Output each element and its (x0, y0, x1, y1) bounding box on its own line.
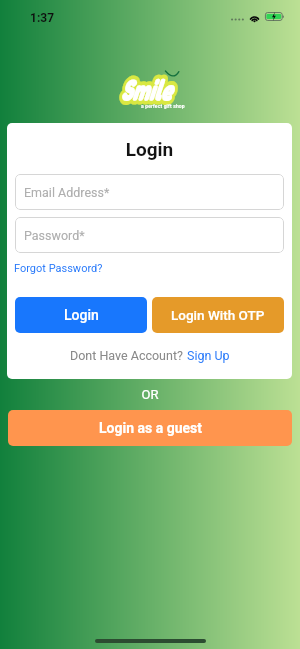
staticText: Smile (121, 72, 172, 106)
staticText: Login (64, 307, 99, 323)
other: Wi-Fi (249, 12, 260, 22)
staticText: a perfect gift shop (141, 103, 185, 109)
other: Battery charging (265, 11, 285, 22)
staticText: Dont Have Account? (70, 348, 187, 363)
staticText: Login With OTP (171, 307, 265, 323)
button[interactable]: Forgot Password? (14, 262, 103, 275)
button[interactable]: Login With OTP (152, 297, 284, 333)
staticText: Login as a guest (99, 420, 202, 436)
staticText: 1:37 (30, 11, 55, 25)
staticText: Smile (121, 72, 172, 106)
staticText: Email Address* (24, 185, 110, 200)
staticText: Login (7, 138, 292, 160)
staticText: OR (0, 387, 300, 402)
button[interactable]: Email Address* (15, 174, 284, 210)
staticText: Password* (24, 228, 85, 243)
button[interactable]: Login as a guest (8, 410, 292, 446)
button[interactable]: Dont Have Account? (70, 348, 230, 363)
button[interactable]: Login (15, 297, 147, 333)
button[interactable]: Password* (15, 217, 284, 253)
staticText: Sign Up (187, 348, 230, 363)
other: Mobile signal (231, 18, 245, 22)
